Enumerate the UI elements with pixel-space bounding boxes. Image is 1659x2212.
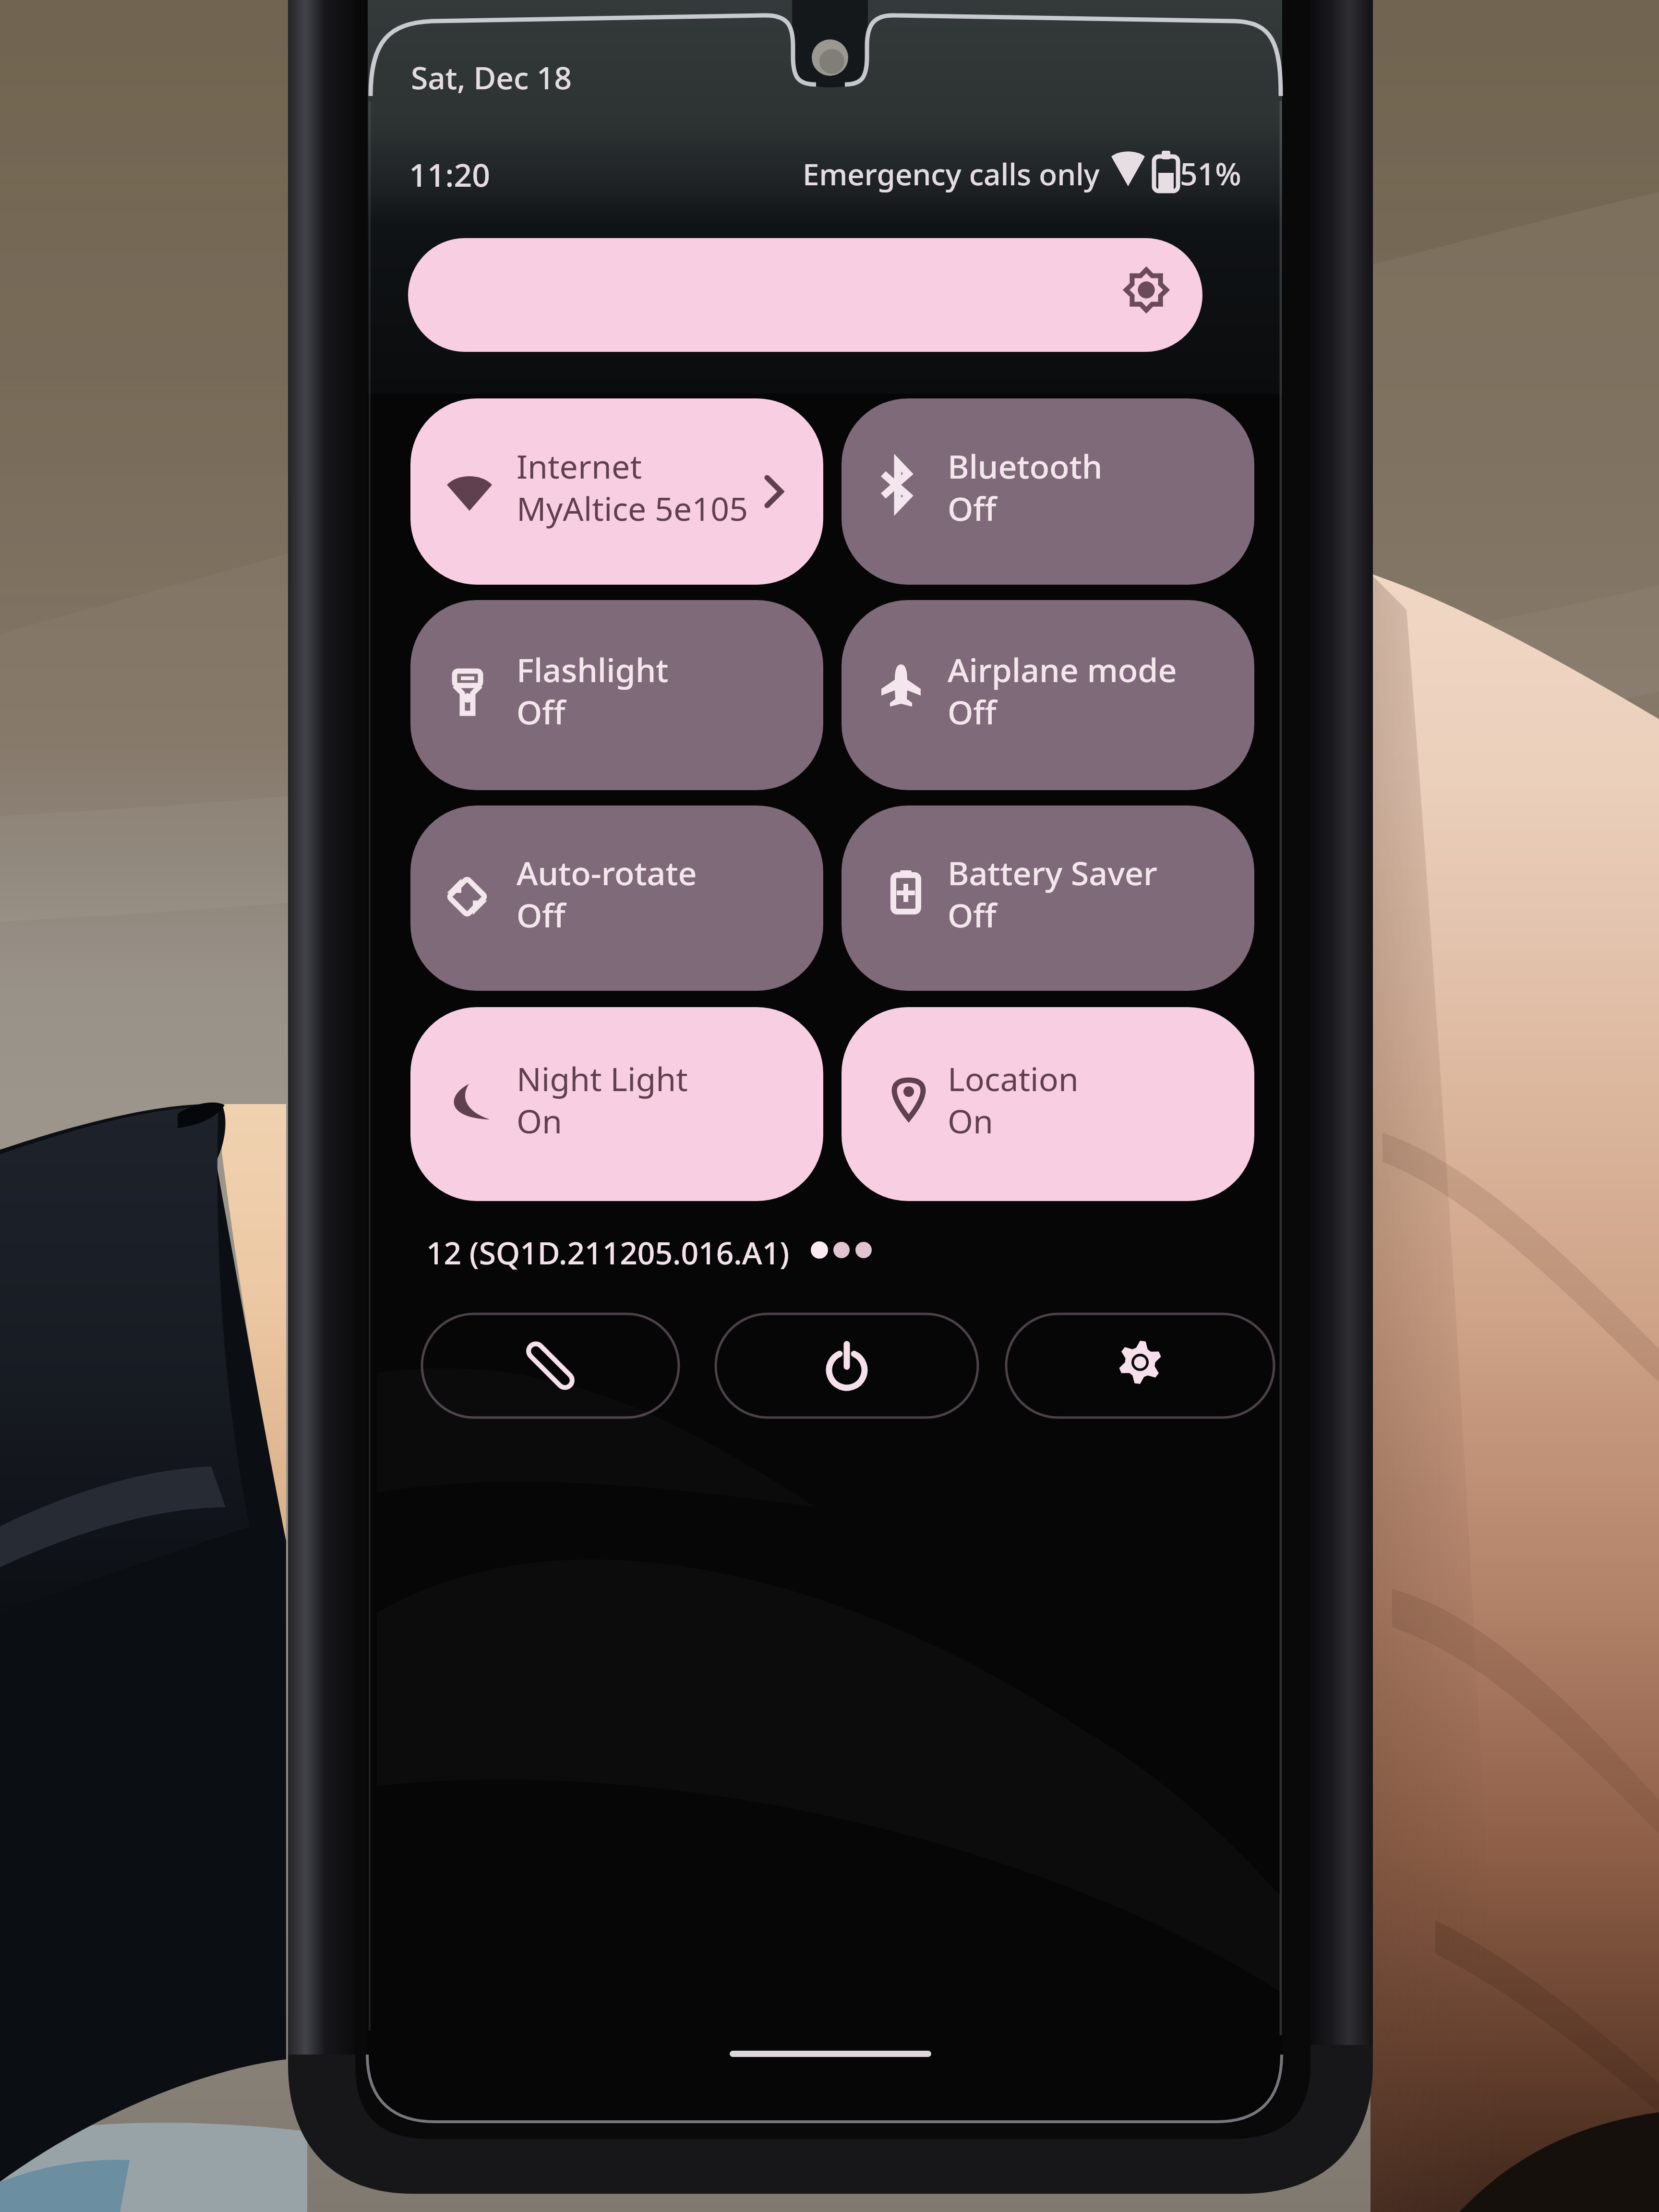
staticText: Airplane mode [948,647,1177,692]
staticText: Sat, Dec 18 [411,57,572,98]
staticText: Location [948,1056,1079,1101]
staticText: Flashlight [517,647,669,692]
staticText: Internet [517,444,642,488]
button[interactable]: Bluetooth [842,398,1254,585]
staticText: 11:20 [409,153,490,196]
button[interactable]: Flashlight [410,600,823,790]
button[interactable]: Auto-rotate [410,805,823,991]
staticText: Off [517,689,565,734]
staticText: On [517,1098,563,1143]
button[interactable]: Brightness [408,238,1202,352]
button[interactable]: Night Light [410,1007,823,1201]
staticText: Off [948,486,997,530]
button[interactable]: Internet [410,398,823,585]
staticText: 12 (SQ1D.211205.016.A1) [426,1232,790,1274]
staticText: 51% [1180,153,1241,194]
button[interactable]: Location [842,1007,1254,1201]
button[interactable]: Battery Saver [842,805,1254,991]
staticText: Bluetooth [948,444,1103,488]
button[interactable]: Airplane mode [842,600,1254,790]
button[interactable]: Edit [421,1312,680,1419]
button[interactable]: Settings [1005,1312,1275,1419]
staticText: Off [517,892,565,937]
staticText: Auto-rotate [517,850,697,895]
staticText: On [948,1098,994,1143]
staticText: MyAltice 5e105 [517,486,748,530]
staticText: Emergency calls only [803,154,1100,194]
button[interactable]: Power [714,1312,979,1419]
staticText: Battery Saver [948,850,1157,895]
staticText: Off [948,892,997,937]
staticText: Off [948,689,997,734]
staticText: Night Light [517,1056,688,1101]
